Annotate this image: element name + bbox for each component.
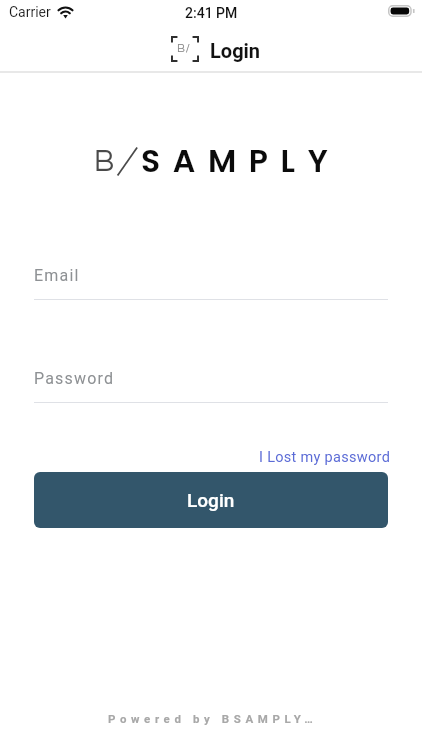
- staticText: Login: [187, 489, 235, 511]
- staticText: Carrier: [9, 4, 51, 20]
- button[interactable]: Login: [34, 472, 388, 528]
- staticText: Email: [34, 266, 80, 285]
- staticText: B: [94, 146, 115, 177]
- other: B/SAMPLY: [171, 36, 199, 62]
- button[interactable]: Password: [34, 369, 388, 403]
- button[interactable]: I Lost my password: [259, 449, 391, 466]
- staticText: SAMPLY: [141, 139, 341, 183]
- staticText: Powered by BSAMPLY…: [108, 712, 318, 725]
- staticText: Password: [34, 369, 115, 388]
- button[interactable]: Email: [34, 266, 388, 300]
- staticText: 2:41 PM: [185, 5, 238, 21]
- staticText: I Lost my password: [259, 449, 391, 466]
- staticText: B/: [177, 42, 191, 54]
- staticText: Login: [210, 39, 261, 62]
